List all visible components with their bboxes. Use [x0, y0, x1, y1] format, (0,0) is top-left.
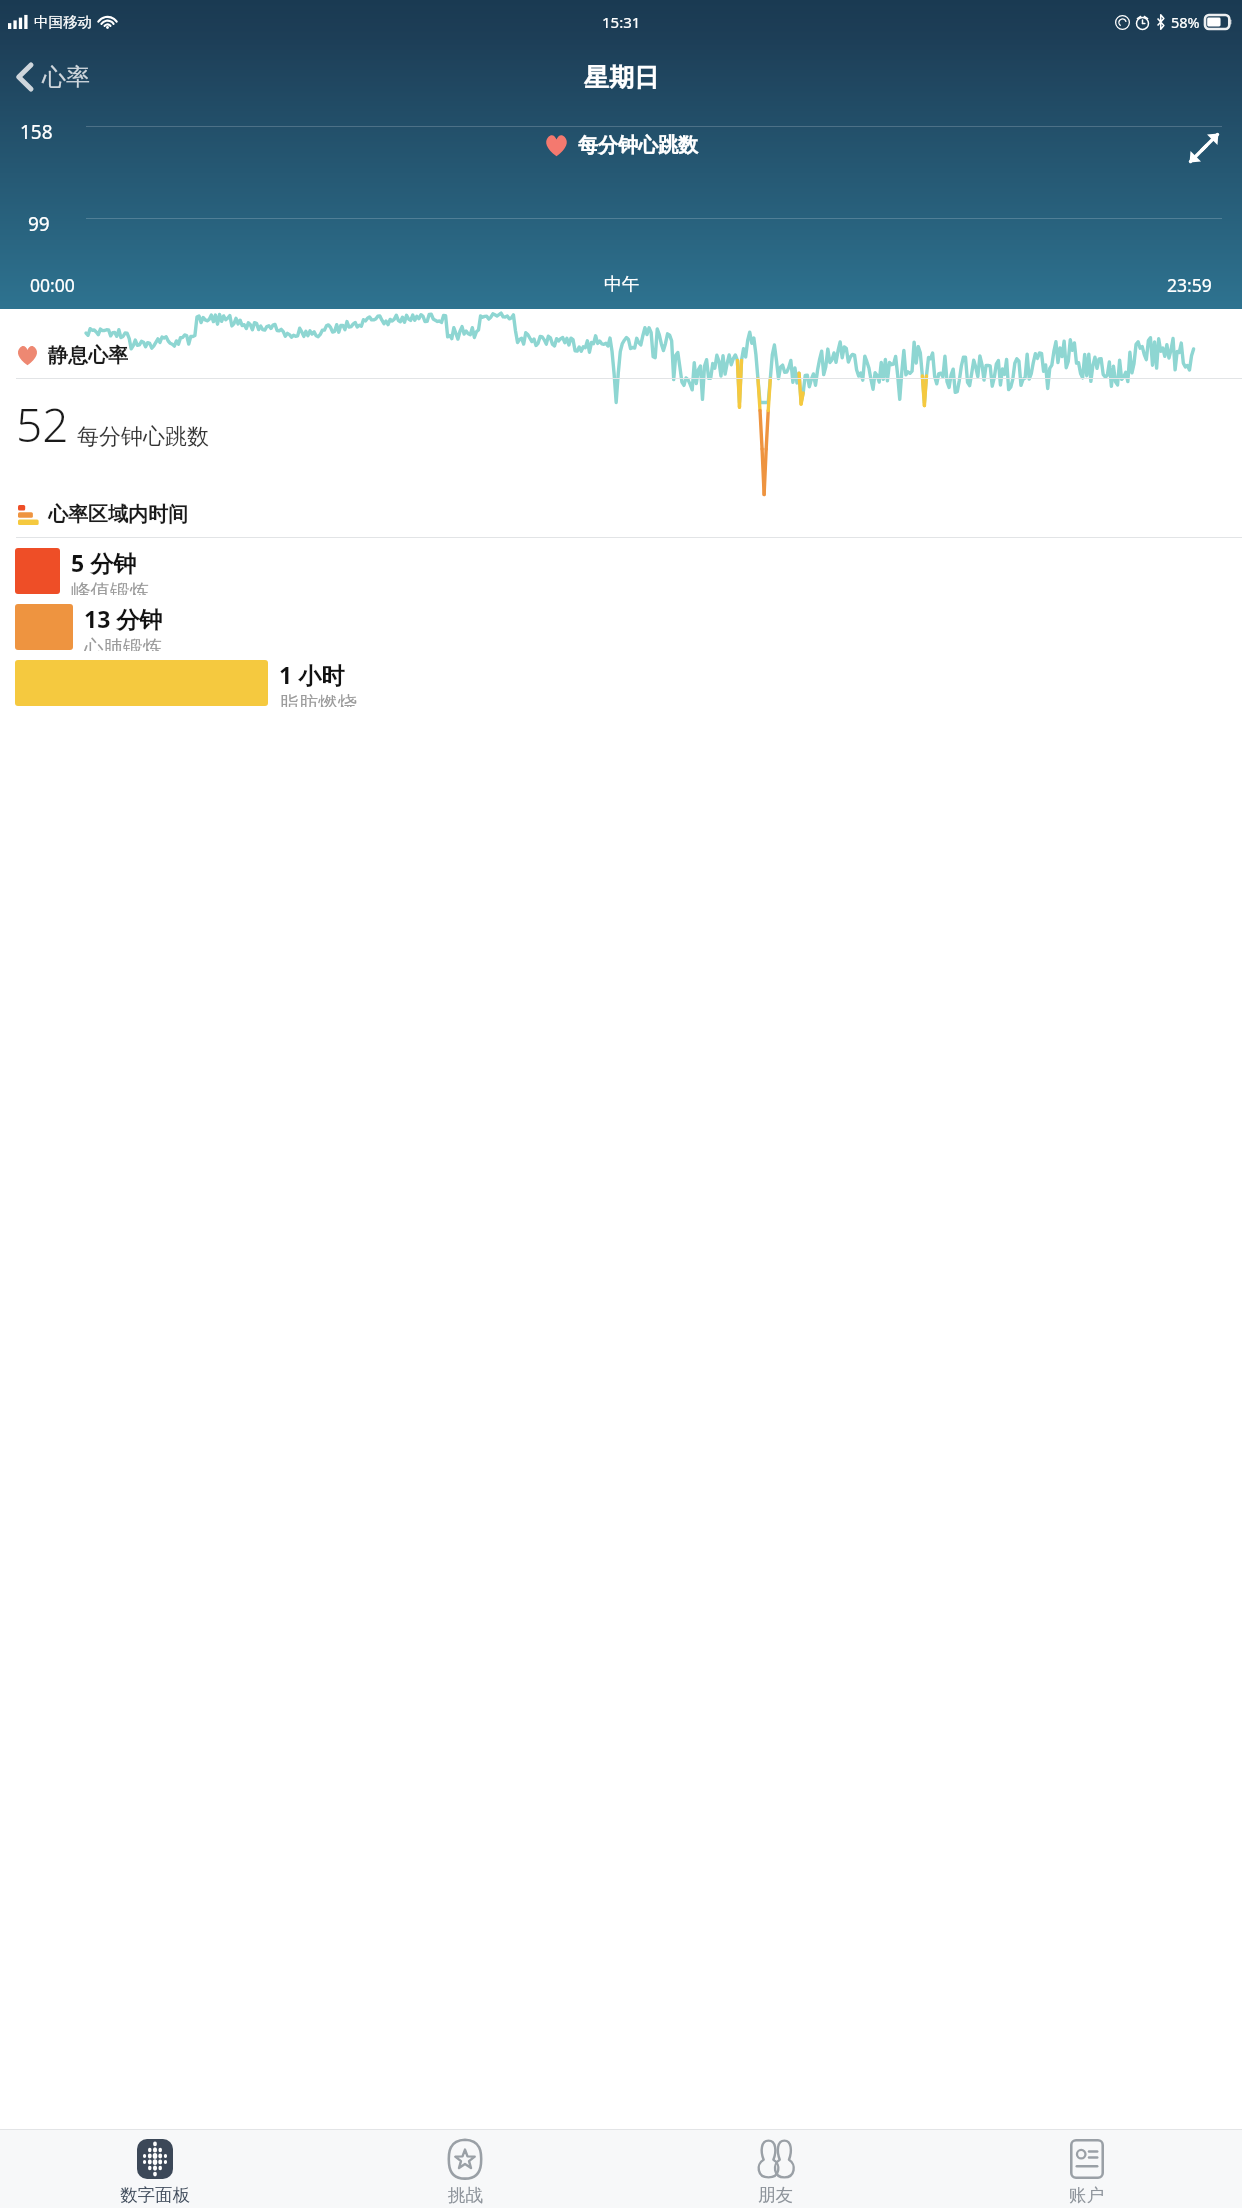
staticText: 每分钟心跳数 — [578, 133, 698, 158]
staticText: 中国移动 — [34, 13, 92, 31]
button[interactable]: Expand chart — [1178, 122, 1230, 174]
staticText: 心率区域内时间 — [48, 502, 188, 527]
staticText: 脂肪燃烧 — [279, 691, 357, 707]
staticText: 挑战 — [448, 2184, 483, 2206]
staticText: 58% — [1171, 12, 1200, 32]
staticText: 13 分钟 — [84, 603, 163, 634]
button[interactable]: 5 分钟 — [0, 547, 1242, 595]
staticText: 1 小时 — [279, 659, 345, 690]
button[interactable]: 账户 — [931, 2130, 1242, 2208]
staticText: 星期日 — [584, 62, 659, 93]
staticText: 数字面板 — [120, 2184, 190, 2206]
button[interactable]: 1 小时 — [0, 659, 1242, 707]
staticText: 峰值锻炼 — [71, 579, 149, 595]
staticText: 52 — [16, 393, 69, 456]
staticText: 00:00 — [30, 273, 75, 297]
staticText: 158 — [20, 119, 53, 145]
staticText: 15:31 — [602, 12, 641, 32]
button[interactable]: 13 分钟 — [0, 603, 1242, 651]
staticText: 心肺锻炼 — [84, 635, 162, 651]
staticText: 账户 — [1069, 2184, 1104, 2206]
button[interactable]: 数字面板 — [0, 2130, 310, 2208]
staticText: 23:59 — [1167, 273, 1212, 297]
staticText: 5 分钟 — [71, 547, 137, 578]
button[interactable]: 挑战 — [310, 2130, 620, 2208]
button[interactable]: 静息心率 — [0, 343, 1242, 456]
staticText: 每分钟心跳数 — [77, 423, 209, 451]
staticText: 静息心率 — [48, 343, 128, 368]
staticText: 中午 — [604, 273, 639, 295]
staticText: 99 — [28, 211, 50, 237]
staticText: 40 — [28, 303, 50, 329]
staticText: 心率 — [42, 62, 90, 92]
staticText: 朋友 — [758, 2184, 793, 2206]
button[interactable]: 心率 — [0, 56, 104, 98]
button[interactable]: 朋友 — [620, 2130, 931, 2208]
